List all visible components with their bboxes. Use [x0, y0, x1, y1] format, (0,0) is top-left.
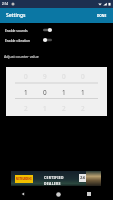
- staticText: DONE: [97, 14, 107, 18]
- staticText: 24: [80, 175, 85, 181]
- button[interactable]: MITSUBISHI: [11, 171, 101, 186]
- staticText: CERTIFIED: [44, 175, 64, 180]
- staticText: Enable sounds: [5, 28, 28, 32]
- staticText: 1: [43, 104, 47, 113]
- staticText: 1: [81, 88, 85, 97]
- staticText: 0: [81, 72, 85, 81]
- staticText: 1: [24, 88, 28, 97]
- staticText: 9: [43, 72, 47, 81]
- button[interactable]: Enable sounds: [0, 25, 55, 35]
- staticText: 0: [24, 72, 28, 81]
- staticText: 1: [62, 88, 66, 97]
- staticText: MITSUBISHI: [16, 177, 32, 181]
- button[interactable]: 0: [16, 67, 35, 116]
- staticText: 0: [62, 72, 66, 81]
- staticText: Adjust counter value: [4, 54, 39, 59]
- staticText: Settings: [6, 12, 26, 19]
- button[interactable]: Recent apps: [83, 188, 95, 200]
- button[interactable]: 9: [35, 67, 54, 116]
- staticText: DEALERS: [44, 181, 61, 186]
- button[interactable]: Enable vibration: [0, 35, 55, 45]
- button[interactable]: Back: [17, 188, 29, 200]
- staticText: 0: [43, 88, 47, 97]
- staticText: 2:14: [2, 2, 8, 6]
- staticText: 2: [24, 104, 28, 113]
- staticText: Enable vibration: [5, 38, 31, 42]
- button[interactable]: Home: [52, 188, 64, 200]
- staticText: 2: [81, 104, 85, 113]
- button[interactable]: 0: [54, 67, 73, 116]
- button[interactable]: 0: [73, 67, 92, 116]
- staticText: 2: [62, 104, 66, 113]
- button[interactable]: DONE: [91, 11, 113, 21]
